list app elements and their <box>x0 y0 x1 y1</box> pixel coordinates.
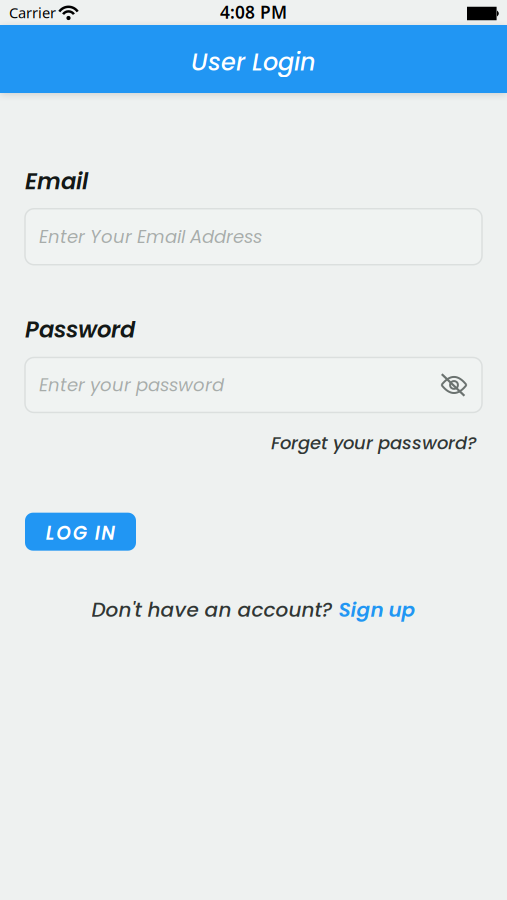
button[interactable]: Forget your password? <box>271 430 477 456</box>
staticText: Enter Your Email Address <box>39 224 262 249</box>
staticText: Sign up <box>338 596 415 624</box>
staticText: Password <box>25 314 135 345</box>
staticText: Don't have an account? <box>91 596 338 624</box>
button[interactable]: Sign up <box>338 596 415 624</box>
button[interactable]: Show password <box>441 373 467 396</box>
button[interactable]: LOG IN <box>25 513 136 551</box>
staticText: User Login <box>191 45 316 79</box>
staticText: 4:08 PM <box>220 0 287 23</box>
staticText: Forget your password? <box>271 430 477 456</box>
staticText: Enter your password <box>39 372 224 398</box>
staticText: LOG IN <box>46 520 115 546</box>
staticText: Carrier <box>9 3 56 22</box>
staticText: Email <box>25 165 88 197</box>
